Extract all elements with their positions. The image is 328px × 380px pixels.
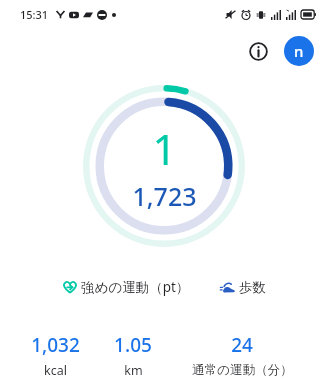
staticText: km	[124, 362, 143, 378]
button[interactable]: Activity goal ring	[81, 83, 247, 249]
button[interactable]: 1,032	[14, 330, 96, 380]
button[interactable]: 強めの運動（pt）	[58, 276, 194, 298]
button[interactable]: Info	[238, 31, 278, 71]
staticText: n	[294, 41, 304, 61]
staticText: 1	[152, 120, 177, 177]
button[interactable]: 歩数	[216, 277, 270, 298]
staticText: 1,032	[31, 332, 80, 358]
staticText: 15:31	[20, 7, 49, 22]
button[interactable]: 1.05	[96, 330, 170, 380]
staticText: 24	[231, 332, 253, 358]
staticText: 歩数	[239, 279, 266, 296]
staticText: 1,723	[132, 179, 197, 213]
staticText: 1.05	[114, 332, 152, 358]
button[interactable]: Account	[284, 36, 314, 66]
button[interactable]: 24	[170, 330, 314, 380]
staticText: kcal	[44, 362, 67, 378]
staticText: 通常の運動（分）	[192, 362, 293, 378]
staticText: 強めの運動（pt）	[81, 278, 190, 296]
